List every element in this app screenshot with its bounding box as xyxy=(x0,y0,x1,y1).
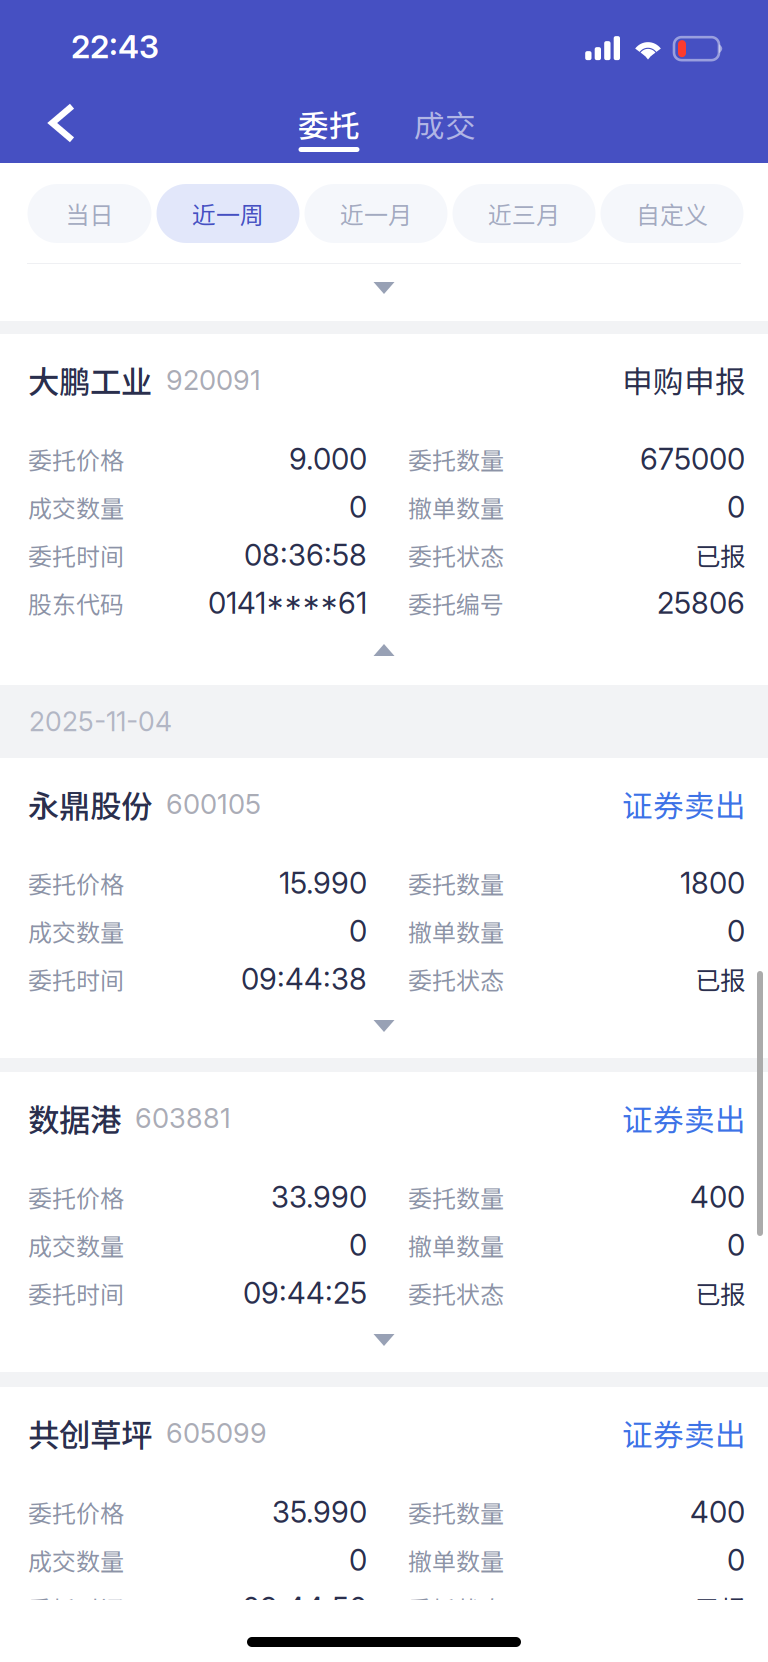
staticText: 605099 xyxy=(166,1416,267,1450)
staticText: 0 xyxy=(349,1227,367,1263)
staticText: 09:44:50 xyxy=(242,1590,367,1626)
staticText: 已报 xyxy=(695,961,745,997)
staticText: 0 xyxy=(727,1227,745,1263)
button[interactable]: 当日 xyxy=(27,184,151,243)
staticText: 委托价格 xyxy=(28,1495,124,1529)
staticText: 撤单数量 xyxy=(408,914,504,948)
staticText: 申购申报 xyxy=(622,358,746,402)
staticText: 33.990 xyxy=(271,1179,367,1215)
staticText: 委托价格 xyxy=(28,866,124,900)
staticText: 委托时间 xyxy=(28,1591,124,1625)
staticText: 永鼎股份 xyxy=(28,781,152,827)
staticText: 22:43 xyxy=(71,27,159,66)
staticText: 成交数量 xyxy=(28,490,124,524)
staticText: 证券卖出 xyxy=(622,1411,746,1455)
staticText: 15.990 xyxy=(279,865,367,901)
button[interactable]: 数据港 xyxy=(0,1095,768,1141)
staticText: 委托状态 xyxy=(408,1276,504,1310)
staticText: 675000 xyxy=(640,441,745,477)
button[interactable]: 成交 xyxy=(387,105,503,152)
staticText: 委托时间 xyxy=(28,538,124,572)
staticText: 证券卖出 xyxy=(622,1096,746,1140)
staticText: 委托时间 xyxy=(28,962,124,996)
staticText: 0 xyxy=(727,1542,745,1578)
button[interactable]: 近一周 xyxy=(156,184,299,243)
staticText: 委托状态 xyxy=(408,962,504,996)
staticText: 委托状态 xyxy=(408,1591,504,1625)
staticText: 当日 xyxy=(65,196,113,231)
staticText: 成交数量 xyxy=(28,1228,124,1262)
staticText: 920091 xyxy=(166,363,261,397)
staticText: 自定义 xyxy=(636,196,708,231)
staticText: 委托 xyxy=(298,102,360,146)
staticText: 0 xyxy=(349,489,367,525)
staticText: 35.990 xyxy=(272,1494,367,1530)
staticText: 0141****61 xyxy=(208,585,367,621)
staticText: 近一月 xyxy=(340,196,412,231)
staticText: 0 xyxy=(727,913,745,949)
staticText: 委托数量 xyxy=(408,866,504,900)
staticText: 大鹏工业 xyxy=(28,357,152,403)
staticText: 委托编号 xyxy=(408,586,504,620)
staticText: 600105 xyxy=(166,787,261,821)
staticText: 共创草坪 xyxy=(28,1410,152,1456)
staticText: 已报 xyxy=(695,1590,745,1626)
staticText: 成交 xyxy=(414,102,476,146)
staticText: 已报 xyxy=(695,1275,745,1311)
button[interactable]: Expand order xyxy=(0,1335,768,1345)
staticText: 603881 xyxy=(135,1101,231,1135)
staticText: 成交数量 xyxy=(28,1543,124,1577)
staticText: 400 xyxy=(690,1179,745,1215)
staticText: 0 xyxy=(727,489,745,525)
staticText: 股东代码 xyxy=(28,586,124,620)
button[interactable]: Back xyxy=(26,90,98,156)
button[interactable]: 永鼎股份 xyxy=(0,781,768,827)
staticText: 委托数量 xyxy=(408,1495,504,1529)
staticText: 0 xyxy=(349,913,367,949)
staticText: 委托状态 xyxy=(408,538,504,572)
staticText: 委托数量 xyxy=(408,442,504,476)
staticText: 成交数量 xyxy=(28,914,124,948)
staticText: 委托数量 xyxy=(408,1180,504,1214)
staticText: 已报 xyxy=(695,537,745,573)
staticText: 近三月 xyxy=(488,196,560,231)
button[interactable]: Collapse order xyxy=(0,645,768,655)
staticText: 400 xyxy=(690,1494,745,1530)
staticText: 09:44:25 xyxy=(243,1275,367,1311)
staticText: 近一周 xyxy=(192,196,264,231)
button[interactable]: Expand order xyxy=(0,1021,768,1031)
staticText: 证券卖出 xyxy=(622,782,746,826)
staticText: 委托时间 xyxy=(28,1276,124,1310)
staticText: 撤单数量 xyxy=(408,1543,504,1577)
button[interactable]: 共创草坪 xyxy=(0,1410,768,1456)
staticText: 撤单数量 xyxy=(408,1228,504,1262)
staticText: 9.000 xyxy=(289,441,367,477)
button[interactable]: 近一月 xyxy=(304,184,447,243)
staticText: 2025-11-04 xyxy=(29,705,172,738)
staticText: 委托价格 xyxy=(28,442,124,476)
button[interactable]: 近三月 xyxy=(452,184,595,243)
staticText: 0 xyxy=(349,1542,367,1578)
staticText: 1800 xyxy=(680,865,745,901)
staticText: 25806 xyxy=(657,585,745,621)
button[interactable]: 大鹏工业 xyxy=(0,357,768,403)
staticText: 委托价格 xyxy=(28,1180,124,1214)
staticText: 撤单数量 xyxy=(408,490,504,524)
staticText: 数据港 xyxy=(28,1095,121,1141)
button[interactable]: Collapse filter xyxy=(0,283,768,293)
button[interactable]: 自定义 xyxy=(600,184,743,243)
staticText: 08:36:58 xyxy=(244,537,367,573)
button[interactable]: 委托 xyxy=(271,105,387,152)
staticText: 09:44:38 xyxy=(241,961,367,997)
